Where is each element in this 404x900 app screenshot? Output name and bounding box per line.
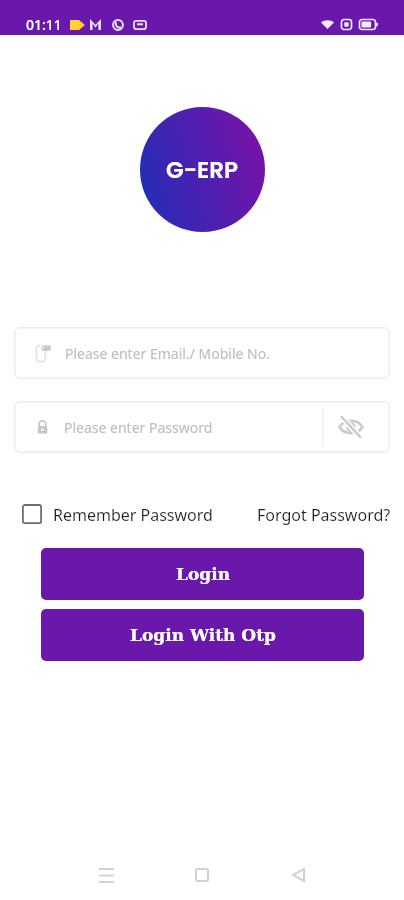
staticText: Please enter Password <box>64 418 213 437</box>
staticText: G-ERP <box>166 154 239 186</box>
button[interactable]: Forgot Password? <box>257 504 391 526</box>
staticText: Forgot Password? <box>257 504 391 526</box>
button[interactable]: Recent apps <box>86 855 126 895</box>
button[interactable]: Login With Otp <box>41 609 364 661</box>
button[interactable]: Home <box>182 855 222 895</box>
button[interactable]: Please enter Email./ Mobile No. <box>14 327 390 379</box>
staticText: Remember Password <box>53 504 213 526</box>
button[interactable]: Please enter Password <box>14 401 390 453</box>
button[interactable]: Back <box>278 855 318 895</box>
staticText: Login With Otp <box>130 625 276 645</box>
staticText: Please enter Email./ Mobile No. <box>65 344 270 363</box>
staticText: 01:11 <box>26 15 62 34</box>
button[interactable]: Show password <box>323 401 390 453</box>
staticText: Login <box>176 564 230 584</box>
button[interactable]: Remember Password <box>22 504 213 526</box>
button[interactable]: Login <box>41 548 364 600</box>
